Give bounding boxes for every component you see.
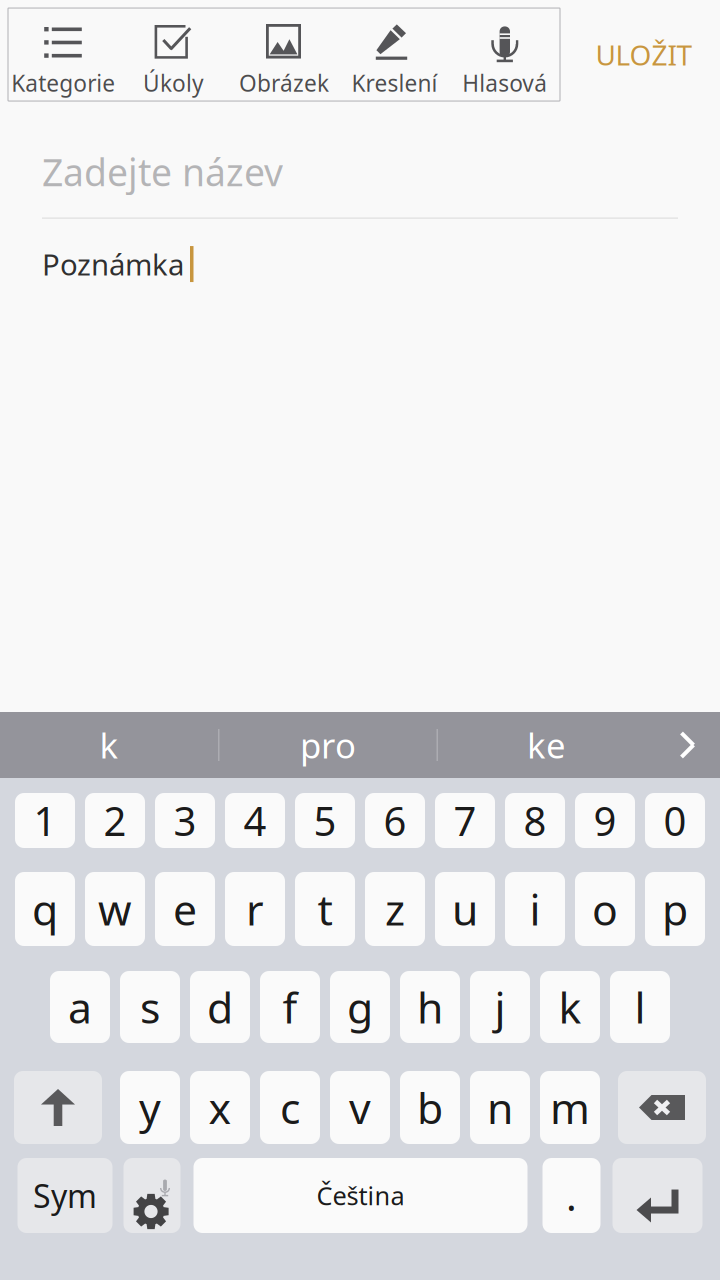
button[interactable]: 1 [15,793,75,848]
button[interactable]: i [505,872,565,946]
button[interactable]: z [365,872,425,946]
staticText: Úkoly [143,68,204,98]
staticText: Sym [33,1174,97,1217]
button[interactable]: Čeština [193,1158,527,1233]
button[interactable]: t [295,872,355,946]
staticText: 8 [523,794,546,847]
button[interactable]: f [260,971,320,1043]
button[interactable]: p [645,872,705,946]
button[interactable]: v [330,1071,390,1144]
button[interactable]: Hlasová [450,8,560,101]
staticText: 5 [313,794,336,847]
staticText: w [98,881,132,937]
staticText: Hlasová [462,68,547,98]
staticText: i [529,881,540,937]
button[interactable]: n [470,1071,530,1144]
button[interactable]: k [540,971,600,1043]
button[interactable]: 9 [575,793,635,848]
staticText: q [32,881,58,937]
staticText: s [140,979,160,1035]
button[interactable]: h [400,971,460,1043]
button[interactable]: 0 [645,793,705,848]
staticText: a [68,979,92,1035]
staticText: g [347,979,373,1035]
button[interactable]: Backspace [618,1071,706,1144]
button[interactable]: Sym [17,1158,112,1233]
staticText: 7 [453,794,476,847]
staticText: t [317,881,332,937]
staticText: f [282,979,297,1035]
button[interactable]: w [85,872,145,946]
staticText: m [550,1079,590,1136]
button[interactable]: x [190,1071,250,1144]
button[interactable]: s [120,971,180,1043]
button[interactable]: Input settings [123,1158,180,1233]
staticText: c [280,1079,300,1136]
button[interactable]: More suggestions [655,712,720,778]
staticText: v [349,1079,371,1136]
staticText: x [208,1079,231,1136]
staticText: r [246,881,264,937]
staticText: 3 [173,794,196,847]
staticText: Kreslení [351,68,437,98]
staticText: Čeština [316,1179,404,1212]
button[interactable]: Kategorie [8,8,118,101]
staticText: Obrázek [239,68,329,98]
staticText: 9 [593,794,616,847]
button[interactable]: Kreslení [339,8,450,101]
button[interactable]: b [400,1071,460,1144]
button[interactable]: k [0,712,218,778]
staticText: Poznámka [42,245,184,284]
staticText: k [558,979,581,1035]
staticText: p [662,881,688,937]
staticText: d [207,979,233,1035]
button[interactable]: o [575,872,635,946]
button[interactable]: 2 [85,793,145,848]
button[interactable]: d [190,971,250,1043]
staticText: e [173,881,197,937]
button[interactable]: a [50,971,110,1043]
button[interactable]: r [225,872,285,946]
staticText: h [417,979,443,1035]
button[interactable]: Úkoly [118,8,229,101]
staticText: z [385,881,405,937]
button[interactable]: ULOŽIT [568,8,720,101]
button[interactable]: e [155,872,215,946]
staticText: 6 [383,794,406,847]
button[interactable]: j [470,971,530,1043]
staticText: Zadejte název [42,147,283,197]
staticText: y [139,1079,161,1136]
button[interactable]: 8 [505,793,565,848]
staticText: ULOŽIT [595,36,692,73]
button[interactable]: pro [219,712,436,778]
staticText: o [592,881,618,937]
button[interactable]: m [540,1071,600,1144]
staticText: 2 [103,794,126,847]
button[interactable]: Shift [14,1071,102,1144]
staticText: 4 [243,794,266,847]
button[interactable]: g [330,971,390,1043]
button[interactable]: . [542,1158,600,1233]
button[interactable]: ke [438,712,655,778]
staticText: 0 [663,794,686,847]
button[interactable]: Obrázek [229,8,339,101]
staticText: n [487,1079,513,1136]
staticText: u [452,881,478,937]
button[interactable]: 6 [365,793,425,848]
staticText: b [417,1079,443,1136]
button[interactable]: y [120,1071,180,1144]
button[interactable]: 7 [435,793,495,848]
staticText: ke [527,722,566,768]
button[interactable]: 3 [155,793,215,848]
staticText: pro [300,722,356,768]
button[interactable]: Return [612,1158,702,1233]
staticText: . [566,1169,577,1222]
button[interactable]: q [15,872,75,946]
staticText: l [634,979,645,1035]
button[interactable]: 4 [225,793,285,848]
button[interactable]: u [435,872,495,946]
staticText: 1 [33,794,56,847]
button[interactable]: l [610,971,670,1043]
button[interactable]: c [260,1071,320,1144]
button[interactable]: 5 [295,793,355,848]
